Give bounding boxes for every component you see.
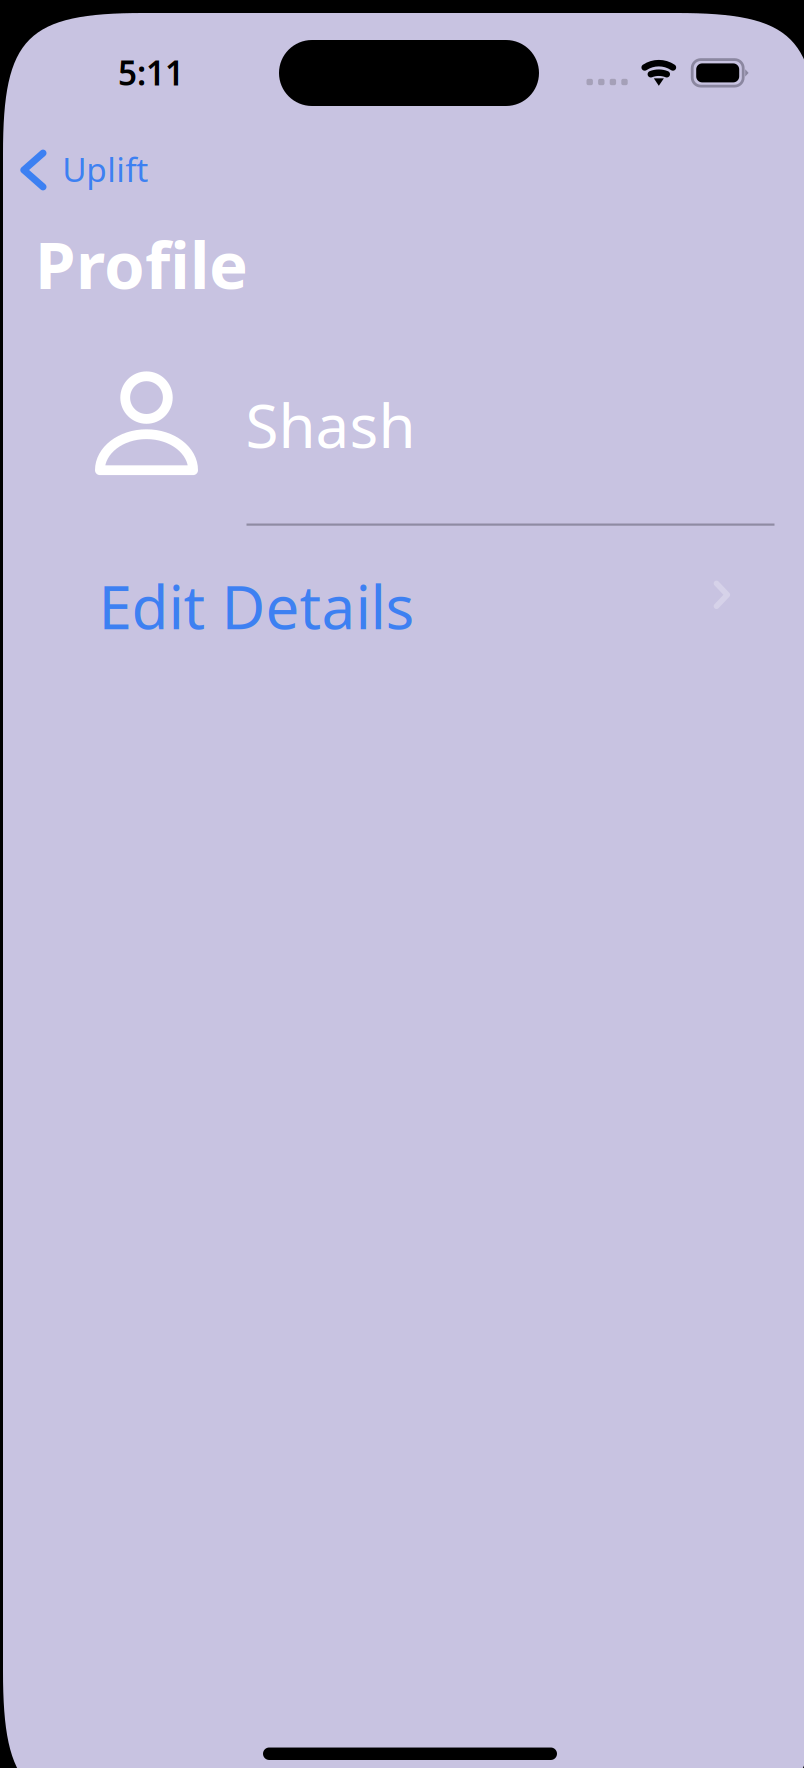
staticText: Uplift — [62, 147, 148, 191]
staticText: Shash — [245, 385, 415, 465]
staticText: Edit Details — [99, 566, 415, 646]
staticText: Profile — [35, 220, 248, 307]
button[interactable]: Uplift — [16, 132, 178, 208]
staticText: 5:11 — [118, 50, 184, 95]
button[interactable]: Edit Details — [95, 550, 775, 642]
